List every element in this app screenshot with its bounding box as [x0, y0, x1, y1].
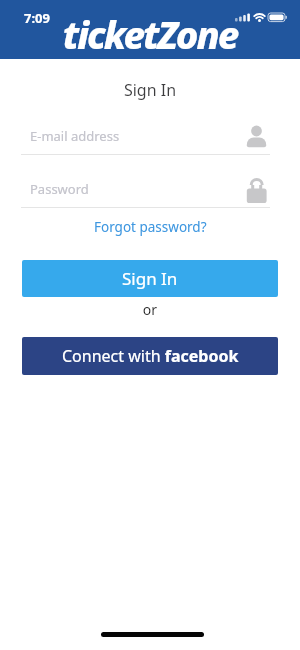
staticText: Sign In — [122, 267, 178, 290]
staticText: ticketZone — [0, 8, 300, 60]
staticText: or — [0, 300, 300, 319]
staticText: Sign In — [0, 79, 300, 101]
button[interactable]: Connect with facebook — [22, 337, 278, 375]
button[interactable]: Sign In — [22, 260, 278, 297]
staticText: 7:09 — [24, 9, 50, 27]
staticText: E-mail address — [30, 127, 120, 145]
button[interactable]: E-mail address — [21, 120, 270, 155]
button[interactable]: Password — [21, 172, 270, 207]
staticText: Connect with facebook — [62, 345, 239, 367]
staticText: Forgot password? — [94, 218, 207, 236]
button[interactable]: Forgot password? — [85, 216, 215, 238]
staticText: Password — [30, 180, 89, 198]
